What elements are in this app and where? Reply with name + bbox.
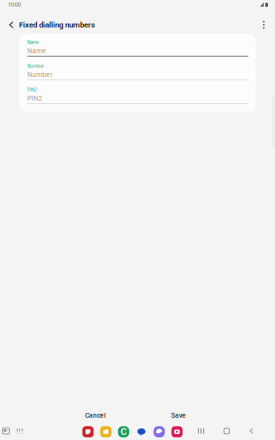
button[interactable]: Multi window (0, 423, 13, 439)
button[interactable]: Contacts (118, 426, 129, 437)
button[interactable]: Recents (191, 423, 211, 439)
button[interactable]: Back (241, 423, 261, 439)
staticText: Fixed dialling numbers (19, 20, 95, 29)
button[interactable]: More options (256, 15, 272, 35)
button[interactable]: Home (217, 423, 237, 439)
staticText: PIN2 (27, 87, 37, 93)
staticText: C (121, 426, 127, 437)
staticText: Name (27, 47, 46, 55)
staticText: PIN2 (27, 94, 42, 102)
staticText: 10:00 (8, 1, 21, 8)
button[interactable]: Internet (154, 426, 165, 437)
button[interactable]: My Files (100, 426, 111, 437)
staticText: Name (27, 40, 38, 45)
button[interactable]: Instagram (171, 426, 183, 437)
staticText: Number (27, 71, 52, 79)
staticText: Save (171, 412, 186, 419)
staticText: Number (27, 64, 44, 69)
button[interactable]: Gallery (82, 426, 94, 437)
button[interactable]: Messages (136, 426, 147, 437)
button[interactable]: Cancel (63, 406, 127, 424)
button[interactable]: All apps (13, 423, 27, 439)
staticText: Cancel (85, 412, 106, 419)
button[interactable]: Save (146, 406, 210, 424)
button[interactable]: Back (4, 15, 19, 35)
